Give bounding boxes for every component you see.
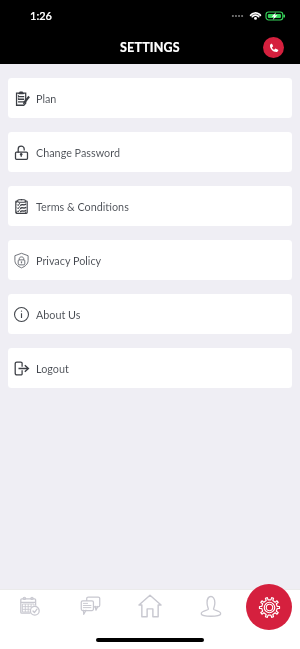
staticText: SETTINGS: [120, 40, 180, 55]
button[interactable]: Plan: [8, 78, 292, 118]
staticText: 1:26: [30, 9, 52, 22]
button[interactable]: Home: [120, 589, 180, 622]
button[interactable]: Call: [263, 37, 284, 58]
button[interactable]: Change Password: [8, 132, 292, 172]
staticText: About Us: [36, 308, 81, 321]
button[interactable]: Calendar: [0, 589, 60, 622]
staticText: Logout: [36, 362, 69, 375]
staticText: Change Password: [36, 146, 120, 159]
staticText: Terms & Conditions: [36, 200, 129, 213]
button[interactable]: Settings: [246, 584, 292, 630]
staticText: Privacy Policy: [36, 254, 102, 267]
button[interactable]: Privacy Policy: [8, 240, 292, 280]
button[interactable]: About Us: [8, 294, 292, 334]
button[interactable]: Profile: [180, 589, 240, 622]
button[interactable]: Terms & Conditions: [8, 186, 292, 226]
staticText: Plan: [36, 92, 57, 105]
button[interactable]: Logout: [8, 348, 292, 388]
button[interactable]: Messages: [60, 589, 120, 622]
